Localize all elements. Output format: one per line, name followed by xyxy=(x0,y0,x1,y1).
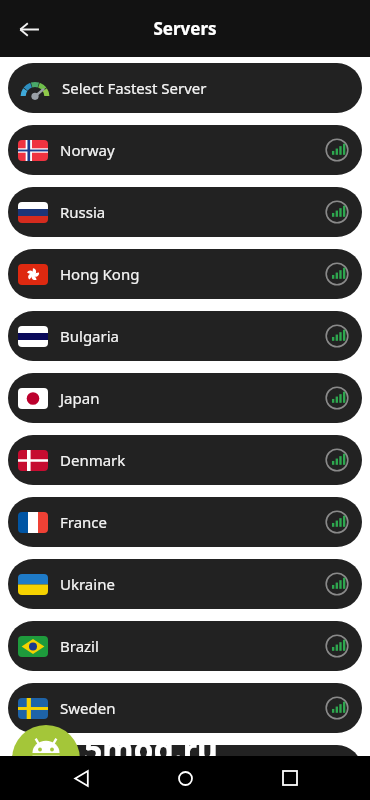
button[interactable]: Ukraine xyxy=(8,559,362,609)
staticText: Sweden xyxy=(60,698,324,718)
button[interactable]: Signal strength xyxy=(324,323,350,349)
button[interactable]: Select Fastest Server xyxy=(8,63,362,113)
button[interactable]: Signal strength xyxy=(324,571,350,597)
button[interactable]: Signal strength xyxy=(324,199,350,225)
button[interactable]: Brazil xyxy=(8,621,362,671)
button[interactable]: Denmark xyxy=(8,435,362,485)
button[interactable]: Signal strength xyxy=(324,695,350,721)
button[interactable]: Hong Kong xyxy=(8,249,362,299)
button[interactable]: Japan xyxy=(8,373,362,423)
staticText: Germany xyxy=(60,760,324,780)
button[interactable]: Back xyxy=(8,8,50,50)
button[interactable]: Russia xyxy=(8,187,362,237)
button[interactable]: Signal strength xyxy=(324,633,350,659)
staticText: Japan xyxy=(60,388,324,408)
staticText: Hong Kong xyxy=(60,264,324,284)
button[interactable]: Bulgaria xyxy=(8,311,362,361)
staticText: France xyxy=(60,512,324,532)
button[interactable]: Sweden xyxy=(8,683,362,733)
staticText: Brazil xyxy=(60,636,324,656)
staticText: Servers xyxy=(153,17,217,40)
staticText: Russia xyxy=(60,202,324,222)
staticText: Select Fastest Server xyxy=(62,78,207,98)
button[interactable]: Norway xyxy=(8,125,362,175)
button[interactable]: Signal strength xyxy=(324,447,350,473)
staticText: Denmark xyxy=(60,450,324,470)
button[interactable]: Back xyxy=(57,756,105,800)
button[interactable]: Signal strength xyxy=(324,509,350,535)
staticText: Bulgaria xyxy=(60,326,324,346)
button[interactable]: Signal strength xyxy=(324,137,350,163)
staticText: Ukraine xyxy=(60,574,324,594)
button[interactable]: Home xyxy=(161,756,209,800)
button[interactable]: Signal strength xyxy=(324,385,350,411)
staticText: Norway xyxy=(60,140,324,160)
button[interactable]: France xyxy=(8,497,362,547)
staticText: 5mod.ru xyxy=(84,727,218,771)
button[interactable]: Signal strength xyxy=(324,261,350,287)
button[interactable]: Germany xyxy=(8,745,362,795)
button[interactable]: Recent apps xyxy=(266,756,314,800)
